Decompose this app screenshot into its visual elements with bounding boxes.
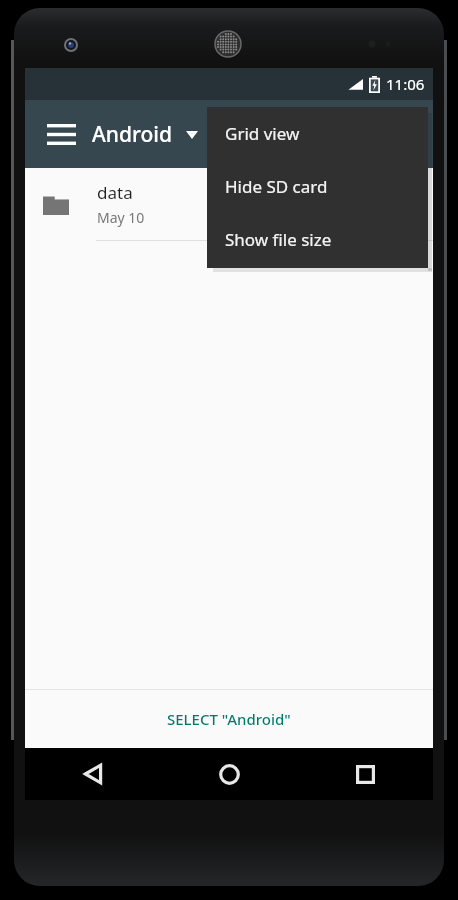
button[interactable]: Hide SD card: [207, 160, 428, 213]
staticText: Grid view: [225, 122, 300, 145]
button[interactable]: data: [25, 168, 433, 240]
button[interactable]: Grid view: [207, 107, 428, 160]
button[interactable]: Recent apps: [343, 752, 387, 796]
button[interactable]: Android: [92, 112, 198, 157]
button[interactable]: Back: [71, 752, 115, 796]
button[interactable]: SELECT "Android": [25, 690, 433, 748]
staticText: data: [97, 181, 133, 204]
staticText: 11:06: [386, 74, 425, 94]
button[interactable]: Home: [207, 752, 251, 796]
staticText: SELECT "Android": [167, 709, 291, 729]
button[interactable]: Show file size: [207, 213, 428, 266]
staticText: Android: [92, 120, 172, 149]
button[interactable]: Open navigation drawer: [41, 114, 81, 154]
staticText: May 10: [97, 208, 145, 227]
staticText: Hide SD card: [225, 175, 328, 198]
staticText: Show file size: [225, 228, 332, 251]
